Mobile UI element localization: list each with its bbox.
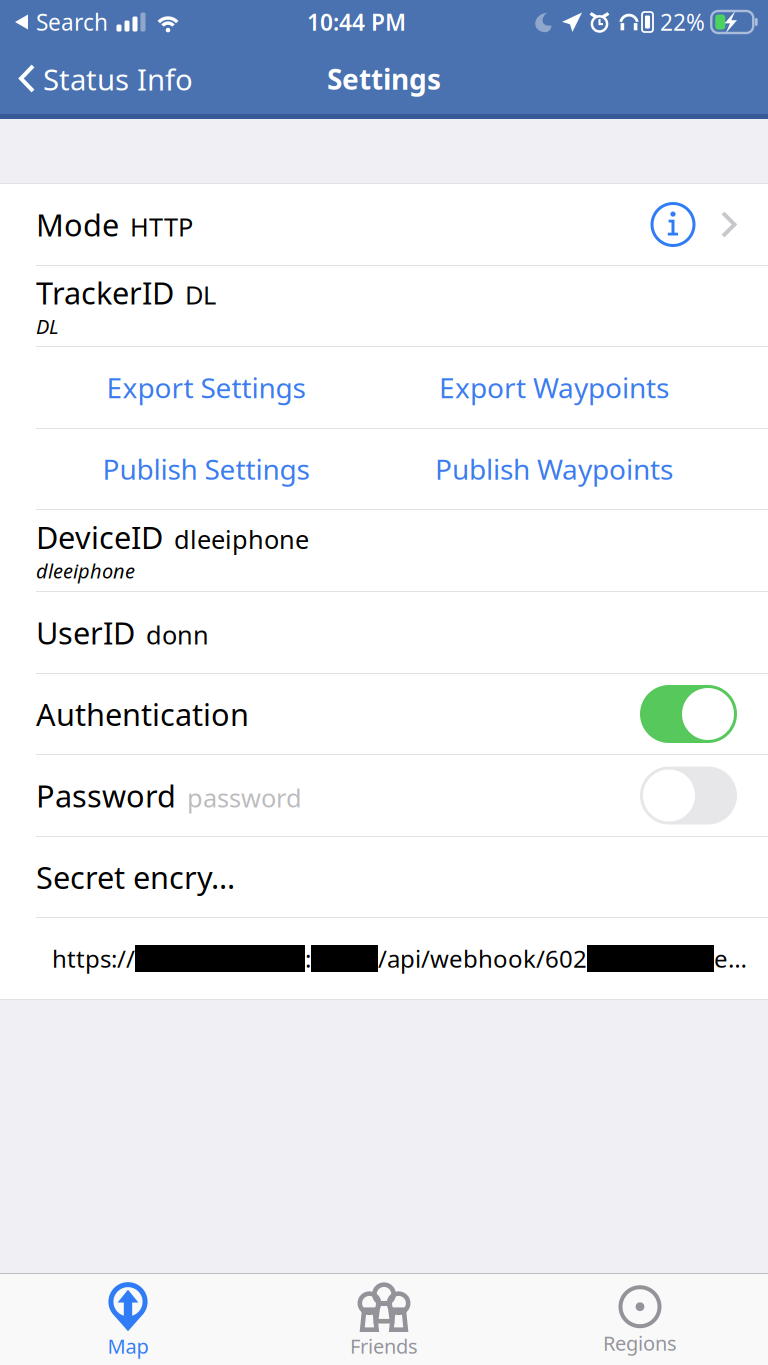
button[interactable]: Password, off: [640, 766, 737, 824]
staticText: DeviceID: [36, 517, 163, 558]
staticText: DL: [185, 278, 216, 312]
staticText: Publish Waypoints: [435, 450, 673, 488]
staticText: Password: [36, 775, 176, 816]
button[interactable]: Friends: [256, 1274, 512, 1365]
staticText: /api/webhook/602: [378, 943, 587, 974]
staticText: e…: [714, 943, 747, 974]
staticText: Publish Settings: [102, 450, 309, 488]
staticText: Authentication: [36, 694, 249, 734]
staticText: password: [187, 781, 302, 814]
staticText: Settings: [327, 60, 441, 98]
staticText: Map: [107, 1333, 148, 1359]
staticText: Regions: [603, 1330, 677, 1356]
staticText: dleeiphone: [36, 558, 135, 584]
button[interactable]: Regions: [512, 1274, 768, 1365]
staticText: :: [305, 943, 311, 974]
button[interactable]: Export Waypoints: [380, 347, 728, 428]
staticText: Export Waypoints: [439, 369, 669, 406]
staticText: Secret encry...: [36, 857, 235, 897]
button[interactable]: Mode details: [696, 201, 737, 248]
button[interactable]: Authentication, on: [640, 685, 737, 743]
button[interactable]: Publish Waypoints: [380, 429, 728, 509]
staticText: Export Settings: [106, 369, 305, 406]
button[interactable]: Mode information: [650, 201, 696, 247]
staticText: TrackerID: [36, 272, 174, 313]
staticText: DL: [36, 313, 59, 340]
button[interactable]: Status Info: [0, 44, 207, 114]
button[interactable]: https://: [0, 918, 768, 999]
staticText: 10:44 PM: [307, 7, 406, 37]
staticText: dleeiphone: [174, 522, 309, 556]
staticText: UserID: [36, 612, 135, 653]
staticText: 22%: [660, 7, 705, 37]
staticText: donn: [146, 618, 209, 651]
staticText: https://: [52, 943, 135, 974]
button[interactable]: Publish Settings: [32, 429, 380, 509]
staticText: Search: [36, 7, 108, 37]
button[interactable]: Map: [0, 1274, 256, 1365]
staticText: Mode: [36, 204, 119, 245]
staticText: Status Info: [43, 59, 193, 98]
staticText: Friends: [350, 1333, 418, 1359]
button[interactable]: Export Settings: [32, 347, 380, 428]
staticText: HTTP: [130, 210, 193, 243]
